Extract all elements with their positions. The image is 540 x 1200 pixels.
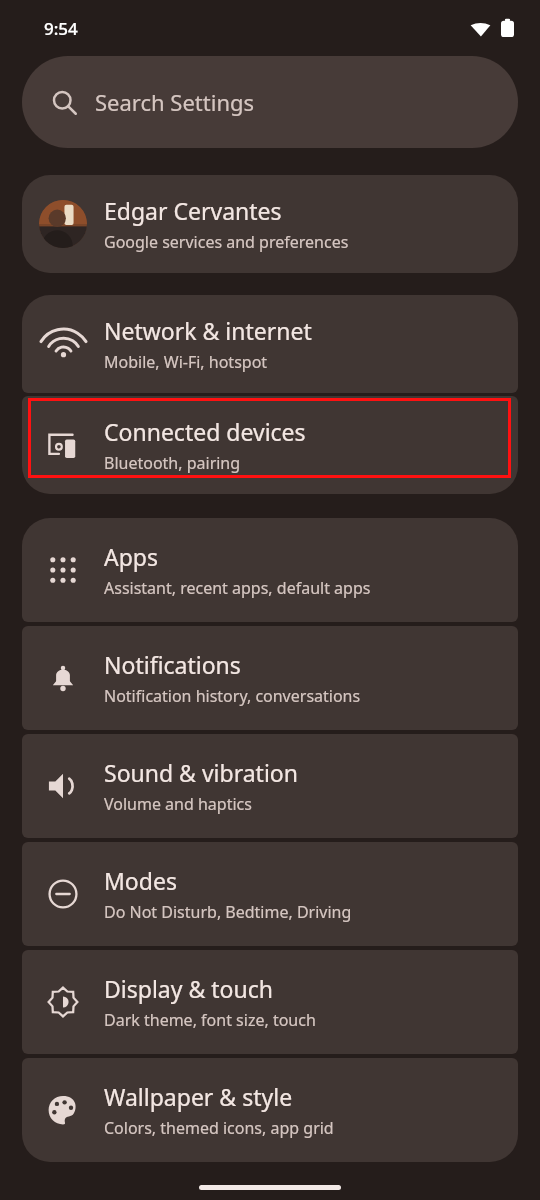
button[interactable]: Sound & vibration (22, 734, 518, 838)
staticText: Notifications (104, 649, 241, 680)
button[interactable]: Wallpaper & style (22, 1058, 518, 1162)
staticText: Bluetooth, pairing (104, 452, 241, 474)
staticText: Volume and haptics (104, 793, 252, 815)
staticText: Colors, themed icons, app grid (104, 1117, 334, 1139)
button[interactable]: Notifications (22, 626, 518, 730)
staticText: Assistant, recent apps, default apps (104, 577, 371, 599)
button[interactable]: Display & touch (22, 950, 518, 1054)
button[interactable]: Search Settings (22, 56, 518, 148)
staticText: Connected devices (104, 416, 306, 447)
staticText: Network & internet (104, 315, 312, 346)
staticText: Display & touch (104, 973, 273, 1004)
staticText: Sound & vibration (104, 757, 298, 788)
staticText: Search Settings (95, 87, 255, 117)
button[interactable]: Apps (22, 518, 518, 622)
button[interactable]: Network & internet (22, 295, 518, 393)
button[interactable]: Edgar Cervantes (22, 175, 518, 273)
staticText: Wallpaper & style (104, 1081, 293, 1112)
staticText: Modes (104, 865, 177, 896)
staticText: 9:54 (44, 17, 78, 40)
staticText: Mobile, Wi-Fi, hotspot (104, 351, 268, 373)
staticText: Google services and preferences (104, 231, 349, 253)
staticText: Dark theme, font size, touch (104, 1009, 316, 1031)
staticText: Notification history, conversations (104, 685, 361, 707)
staticText: Do Not Disturb, Bedtime, Driving (104, 901, 352, 923)
button[interactable]: Modes (22, 842, 518, 946)
staticText: Apps (104, 541, 159, 572)
staticText: Edgar Cervantes (104, 195, 282, 226)
button[interactable]: Connected devices (22, 396, 518, 494)
